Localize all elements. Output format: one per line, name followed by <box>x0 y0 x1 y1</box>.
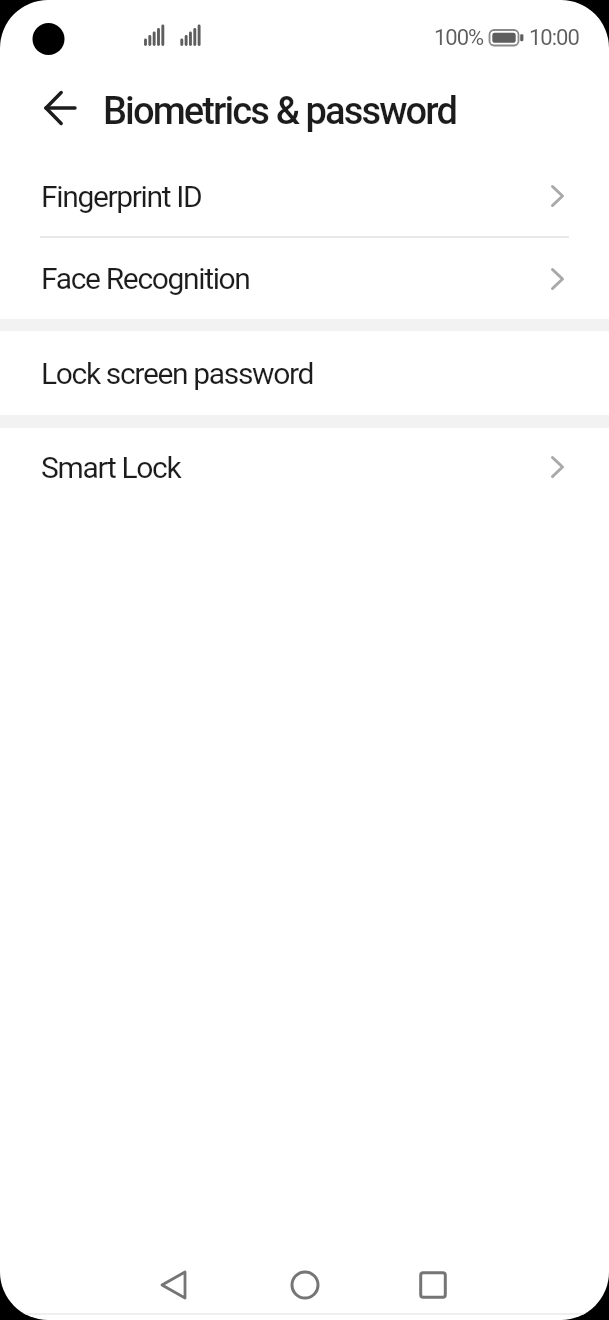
button[interactable] <box>273 1253 337 1317</box>
staticText: Fingerprint ID <box>41 179 202 214</box>
button[interactable] <box>141 1253 205 1317</box>
button[interactable]: Fingerprint ID <box>0 156 609 236</box>
button[interactable]: Face Recognition <box>0 238 609 319</box>
staticText: 100% <box>434 25 484 51</box>
button[interactable] <box>401 1253 465 1317</box>
staticText: 10:00 <box>529 25 579 51</box>
staticText: Lock screen password <box>41 356 314 391</box>
staticText: Smart Lock <box>41 450 181 485</box>
button[interactable]: Smart Lock <box>0 428 609 506</box>
button[interactable]: Lock screen password <box>0 331 609 415</box>
staticText: Biometrics & password <box>103 89 456 134</box>
staticText: Face Recognition <box>41 261 250 296</box>
button[interactable] <box>36 84 84 132</box>
